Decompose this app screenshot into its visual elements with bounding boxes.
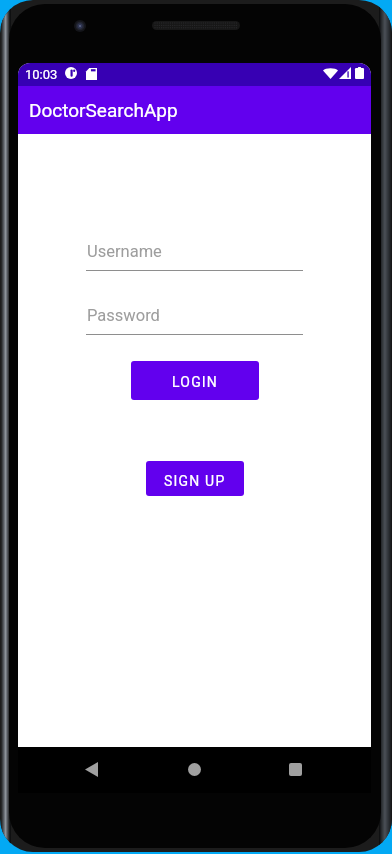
staticText: LOGIN (172, 374, 219, 390)
button[interactable]: LOGIN (131, 361, 259, 400)
button[interactable]: Home (176, 751, 212, 787)
staticText: Password (87, 306, 160, 325)
staticText: Username (87, 242, 162, 261)
button[interactable]: SIGN UP (146, 461, 244, 496)
staticText: 10:03 (25, 67, 58, 82)
button[interactable]: Back (73, 751, 109, 787)
staticText: SIGN UP (164, 473, 226, 489)
staticText: DoctorSearchApp (29, 99, 178, 121)
button[interactable]: Recent apps (277, 751, 313, 787)
